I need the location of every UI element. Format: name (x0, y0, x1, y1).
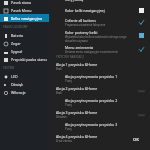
staticText: SYSTEM (3, 66, 15, 70)
button[interactable]: Kolor belki nawigacyjnej (49, 3, 150, 17)
staticText: Bateria (11, 33, 24, 38)
staticText: Zmienia menu nawigacyjne na zmierzenie (65, 50, 118, 54)
button[interactable]: Przyciski paska stanu (0, 55, 49, 63)
button[interactable]: Belka nawigacyjna (0, 14, 49, 22)
button[interactable]: Akcja przytrzymania przycisku 1 (49, 72, 150, 84)
button[interactable]: LED (0, 72, 49, 80)
staticText: Akcja przytrzymania przycisku 1 (65, 74, 118, 79)
staticText: LED (11, 74, 18, 79)
staticText: PASEK ULUBIONY (3, 25, 28, 29)
staticText: OK (133, 137, 139, 142)
staticText: Akcja 3 przycisku &Home (56, 110, 98, 115)
staticText: Przyciski paska stanu (11, 57, 47, 62)
button[interactable]: Akcja przytrzymania przycisku 2 (49, 96, 150, 108)
staticText: Pusty (65, 79, 72, 83)
staticText: Akcja przytrzymania przycisku 2 (65, 98, 118, 103)
staticText: Pusty (65, 127, 72, 131)
button[interactable]: Akcja 2 przycisku &Home (49, 84, 150, 96)
staticText: Pusty (65, 103, 72, 107)
staticText: Kolor poziomy belki (65, 30, 98, 35)
staticText: Ostatnie (56, 115, 67, 119)
staticText: Wibracje (11, 90, 26, 95)
staticText: Brak (56, 91, 62, 95)
staticText: Zrzut ekranu (56, 139, 73, 143)
staticText: PRZYCISKI NAWIGACJI (56, 55, 84, 59)
button[interactable]: Sygnał (0, 47, 49, 55)
staticText: Pasek Menu (11, 8, 32, 13)
button[interactable]: Zegar (0, 39, 49, 47)
button[interactable]: Kolor poziomy belki (49, 28, 150, 43)
staticText: Akcja 1 przycisku &Home (56, 62, 98, 67)
staticText: Kolor belki nawigacyjnej (65, 8, 105, 13)
button[interactable]: Cofanie all buttons (49, 17, 150, 28)
button[interactable]: Akcja przytrzymania przycisku 3 (49, 120, 150, 132)
button[interactable]: Pasek Menu (0, 6, 49, 14)
staticText: Akcja przytrzymania przycisku 3 (65, 122, 118, 127)
button[interactable]: Bateria (0, 31, 49, 39)
button[interactable]: OK (132, 136, 140, 143)
staticText: Pasek stanu (11, 0, 32, 5)
staticText: Zegar (11, 41, 21, 46)
button[interactable]: Akcja 4 przycisku &Home (49, 132, 150, 144)
button[interactable]: Pasek stanu (0, 0, 49, 6)
button[interactable]: Dźwięk (0, 80, 49, 88)
button[interactable]: Akcja 1 przycisku &Home (49, 60, 150, 72)
button[interactable]: Akcja 3 przycisku &Home (49, 108, 150, 120)
staticText: Belka nawigacyjna (11, 16, 43, 21)
staticText: Cofanie all buttons (65, 18, 96, 23)
staticText: Menu zmierzenia (65, 45, 94, 50)
staticText: Ukryj belkę (65, 0, 84, 2)
staticText: Akcja 2 przycisku &Home (56, 86, 98, 91)
staticText: Brak (56, 67, 62, 71)
staticText: Dźwięk (11, 82, 24, 87)
staticText: Przywraca ustawienia fabryczne (65, 23, 106, 27)
button[interactable]: Ukryj belkę (49, 0, 150, 3)
button[interactable]: Menu zmierzenia (49, 43, 150, 55)
staticText: Akcja 4 przycisku &Home (56, 134, 98, 139)
button[interactable]: Wibracje (0, 88, 49, 96)
staticText: Wyświetla kolor belki w zależności od te… (65, 35, 134, 42)
staticText: Sygnał (11, 49, 23, 54)
